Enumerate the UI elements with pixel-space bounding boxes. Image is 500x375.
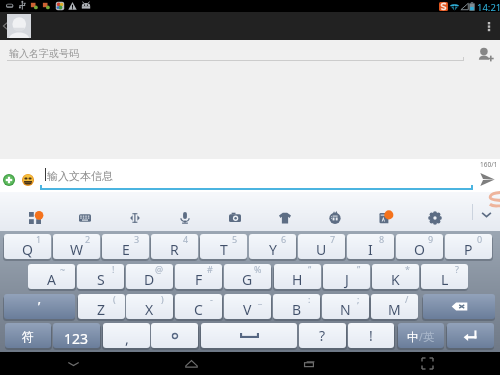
staticText: 14:21 <box>477 1 500 13</box>
staticText: S <box>97 270 105 289</box>
button[interactable]: Q <box>4 234 51 259</box>
button[interactable]: W <box>53 234 100 259</box>
staticText: ! <box>369 326 373 345</box>
staticText: P <box>464 240 473 259</box>
staticText: 8 <box>379 234 385 245</box>
button[interactable]: L <box>421 264 468 289</box>
staticText: ( <box>113 294 116 305</box>
button[interactable]: Add recipient <box>476 45 496 65</box>
button[interactable]: P <box>445 234 492 259</box>
button[interactable]: M <box>371 294 418 319</box>
button[interactable]: ⌫ <box>423 294 495 319</box>
button[interactable]: H <box>274 264 321 289</box>
staticText: 123 <box>64 329 89 348</box>
staticText: 160/1 <box>480 160 498 169</box>
button[interactable]: D <box>126 264 173 289</box>
button[interactable]: J <box>323 264 370 289</box>
button[interactable]: Hide keyboard <box>28 352 118 375</box>
button[interactable]: A <box>28 264 75 289</box>
button[interactable]: Add attachment <box>2 173 16 187</box>
button[interactable]: Y <box>249 234 296 259</box>
button[interactable]: Z <box>78 294 125 319</box>
staticText: C <box>194 300 203 319</box>
button[interactable]: Home <box>146 352 236 375</box>
staticText: ? <box>455 264 459 275</box>
staticText: M <box>388 300 401 319</box>
staticText: Y <box>269 240 277 259</box>
button[interactable]: Dictionary <box>360 192 409 231</box>
button[interactable]: Screenshot <box>382 352 472 375</box>
staticText: R <box>170 240 179 259</box>
staticText: “ <box>308 264 312 275</box>
button[interactable]: More options <box>478 12 500 40</box>
button[interactable]: ? <box>299 323 346 348</box>
button[interactable]: ' <box>4 294 75 319</box>
button[interactable]: K <box>372 264 419 289</box>
button[interactable]: ↵ <box>447 323 494 348</box>
staticText: Q <box>22 240 33 259</box>
button[interactable]: Voice input <box>160 192 209 231</box>
staticText: ” <box>357 264 361 275</box>
staticText: Z <box>97 300 106 319</box>
button[interactable]: O <box>396 234 443 259</box>
button[interactable]: E <box>102 234 149 259</box>
staticText: 符 <box>22 329 34 344</box>
button[interactable]: F <box>175 264 222 289</box>
button[interactable]: T <box>200 234 247 259</box>
button[interactable]: B <box>273 294 320 319</box>
button[interactable]: C <box>175 294 222 319</box>
staticText: ; <box>357 294 360 305</box>
button[interactable]: X <box>126 294 173 319</box>
button[interactable]: Send <box>478 170 496 188</box>
button[interactable]: U <box>298 234 345 259</box>
button[interactable]: Themes <box>260 192 309 231</box>
button[interactable]: Calendar <box>310 192 359 231</box>
button[interactable]: N <box>322 294 369 319</box>
staticText: H <box>292 270 303 289</box>
button[interactable]: Apps <box>10 192 59 231</box>
staticText: V <box>243 300 252 319</box>
staticText: 9 <box>428 234 434 245</box>
staticText: 1 <box>36 234 42 245</box>
button[interactable]: Settings <box>410 192 459 231</box>
button[interactable]: R <box>151 234 198 259</box>
button[interactable]: Back <box>0 12 31 40</box>
staticText: 3 <box>134 234 140 245</box>
staticText: T <box>220 240 228 259</box>
staticText: ? <box>319 326 326 345</box>
button[interactable]: V <box>224 294 271 319</box>
button[interactable]: I <box>347 234 394 259</box>
staticText: 输入文本信息 <box>47 169 113 183</box>
staticText: _ <box>258 294 262 305</box>
staticText: J <box>345 270 349 289</box>
staticText: ’ <box>38 297 41 315</box>
staticText: ! <box>112 264 115 275</box>
staticText: ) <box>161 294 164 305</box>
button[interactable]: 123 <box>53 323 100 348</box>
staticText: K <box>391 270 400 289</box>
staticText: 5 <box>232 234 238 245</box>
button[interactable]: Cursor <box>110 192 159 231</box>
button[interactable]: ␣ <box>201 323 297 348</box>
button[interactable]: 符 <box>5 323 51 348</box>
button[interactable]: Keyboard layout <box>60 192 109 231</box>
button[interactable]: 中/英 <box>398 323 444 348</box>
staticText: * <box>405 264 410 275</box>
staticText: E <box>122 240 130 259</box>
staticText: F <box>195 270 203 289</box>
button[interactable]: ! <box>348 323 394 348</box>
staticText: 中 <box>407 330 419 344</box>
staticText: G <box>242 270 253 289</box>
staticText: D <box>144 270 155 289</box>
button[interactable]: Recent apps <box>264 352 354 375</box>
button[interactable]: 。 <box>151 323 198 348</box>
button[interactable]: S <box>77 264 124 289</box>
button[interactable]: , <box>103 323 150 348</box>
button[interactable]: Emoji <box>21 173 35 187</box>
button[interactable]: G <box>224 264 271 289</box>
staticText: 4 <box>183 234 189 245</box>
staticText: B <box>292 300 302 319</box>
button[interactable]: Hide keyboard <box>473 198 500 231</box>
staticText: O <box>414 240 425 259</box>
button[interactable]: Camera <box>210 192 259 231</box>
